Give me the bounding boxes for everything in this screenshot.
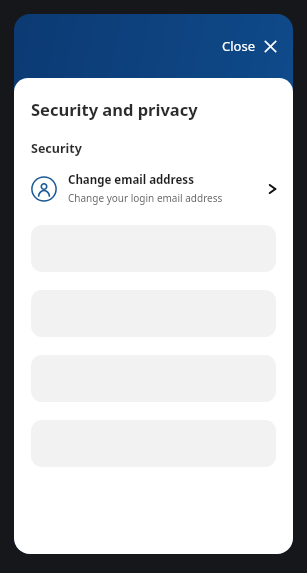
other: Open change email address xyxy=(265,182,279,196)
staticText: Security xyxy=(31,140,82,157)
staticText: Change your login email address xyxy=(68,191,223,205)
button[interactable]: Close xyxy=(216,33,283,59)
staticText: Close xyxy=(222,37,255,55)
staticText: Change email address xyxy=(68,172,194,188)
button[interactable]: Change email address xyxy=(14,168,293,209)
staticText: Security and privacy xyxy=(31,98,198,120)
